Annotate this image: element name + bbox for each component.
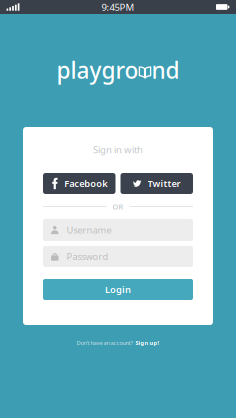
button[interactable]: Username	[43, 219, 193, 241]
staticText: playgro	[56, 55, 138, 85]
staticText: Password	[67, 250, 109, 263]
button[interactable]: Password	[43, 246, 193, 267]
staticText: Twitter	[148, 177, 181, 190]
button[interactable]: Don't have an account?	[76, 339, 159, 347]
staticText: 9:45PM	[101, 0, 134, 14]
staticText: Don't have an account?	[76, 339, 132, 347]
staticText: Sign up!	[135, 339, 159, 347]
staticText: nd	[151, 55, 179, 85]
button[interactable]: Twitter	[120, 173, 193, 194]
button[interactable]: Facebook	[43, 173, 115, 194]
staticText: Login	[105, 283, 131, 296]
staticText: Username	[67, 224, 112, 236]
staticText: Sign in with	[93, 143, 143, 156]
staticText: OR	[112, 201, 123, 212]
button[interactable]: Login	[43, 279, 193, 300]
staticText: Facebook	[64, 177, 107, 190]
